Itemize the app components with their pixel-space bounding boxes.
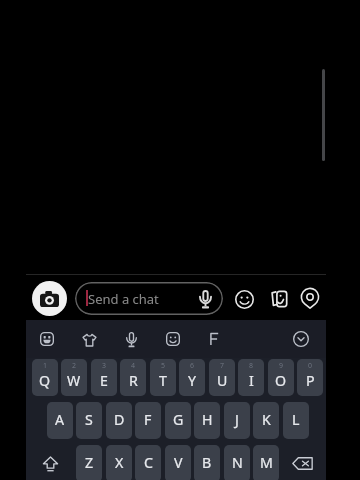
- staticText: O: [275, 371, 287, 390]
- button[interactable]: Backspace: [286, 445, 319, 480]
- button[interactable]: 5: [150, 359, 176, 396]
- staticText: Y: [188, 371, 197, 390]
- button[interactable]: N: [224, 445, 250, 480]
- button[interactable]: S: [76, 402, 102, 439]
- button[interactable]: Text style: [201, 326, 227, 352]
- button[interactable]: Open camera: [32, 281, 67, 316]
- button[interactable]: K: [253, 402, 279, 439]
- button[interactable]: Snap memories: [265, 285, 293, 313]
- button[interactable]: 3: [91, 359, 117, 396]
- staticText: X: [115, 453, 124, 472]
- staticText: I: [249, 371, 254, 390]
- button[interactable]: 2: [61, 359, 87, 396]
- staticText: 0: [308, 361, 313, 371]
- button[interactable]: J: [224, 402, 250, 439]
- button[interactable]: Z: [76, 445, 102, 480]
- button[interactable]: Stickers: [230, 285, 258, 313]
- staticText: G: [173, 410, 184, 429]
- staticText: Q: [39, 371, 51, 390]
- staticText: T: [159, 371, 167, 390]
- button[interactable]: M: [253, 445, 279, 480]
- staticText: A: [55, 410, 65, 429]
- button[interactable]: 0: [297, 359, 323, 396]
- staticText: M: [260, 453, 273, 472]
- staticText: 1: [43, 361, 48, 371]
- staticText: R: [129, 371, 138, 390]
- staticText: B: [202, 453, 212, 472]
- button[interactable]: 7: [209, 359, 235, 396]
- staticText: W: [67, 371, 81, 390]
- button[interactable]: Shift: [34, 445, 67, 480]
- button[interactable]: Stickers: [76, 326, 102, 352]
- staticText: 4: [131, 361, 136, 371]
- button[interactable]: V: [165, 445, 191, 480]
- button[interactable]: 1: [32, 359, 58, 396]
- button[interactable]: 4: [120, 359, 146, 396]
- staticText: H: [202, 410, 213, 429]
- staticText: P: [306, 371, 315, 390]
- staticText: 9: [279, 361, 284, 371]
- button[interactable]: D: [106, 402, 132, 439]
- staticText: E: [100, 371, 108, 390]
- button[interactable]: B: [194, 445, 220, 480]
- button[interactable]: C: [135, 445, 161, 480]
- button[interactable]: X: [106, 445, 132, 480]
- staticText: D: [114, 410, 125, 429]
- button[interactable]: Send a chat: [75, 282, 223, 315]
- staticText: C: [144, 453, 153, 472]
- button[interactable]: F: [135, 402, 161, 439]
- staticText: 8: [249, 361, 254, 371]
- button[interactable]: Voice input: [118, 326, 144, 352]
- button[interactable]: 8: [238, 359, 264, 396]
- staticText: U: [217, 371, 228, 390]
- staticText: 2: [72, 361, 77, 371]
- staticText: N: [232, 453, 243, 472]
- staticText: 3: [102, 361, 107, 371]
- staticText: K: [262, 410, 271, 429]
- staticText: 6: [190, 361, 195, 371]
- staticText: S: [85, 410, 93, 429]
- staticText: Z: [85, 453, 94, 472]
- button[interactable]: H: [194, 402, 220, 439]
- staticText: J: [235, 410, 239, 429]
- button[interactable]: More options: [288, 326, 314, 352]
- button[interactable]: L: [283, 402, 309, 439]
- staticText: V: [174, 453, 183, 472]
- button[interactable]: 9: [268, 359, 294, 396]
- staticText: F: [144, 410, 152, 429]
- staticText: Send a chat: [88, 290, 159, 308]
- button[interactable]: Emoji: [160, 326, 186, 352]
- button[interactable]: G: [165, 402, 191, 439]
- staticText: L: [292, 410, 300, 429]
- staticText: 7: [220, 361, 225, 371]
- button[interactable]: Snap Map: [296, 285, 324, 313]
- button[interactable]: 6: [179, 359, 205, 396]
- button[interactable]: A: [47, 402, 73, 439]
- staticText: 5: [161, 361, 166, 371]
- button[interactable]: Voice note: [194, 287, 217, 310]
- button[interactable]: Gboard: [34, 326, 60, 352]
